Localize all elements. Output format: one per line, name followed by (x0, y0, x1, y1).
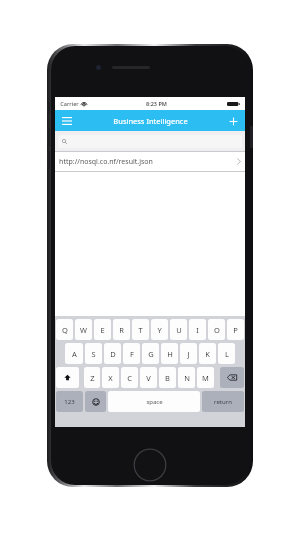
staticText: J (187, 349, 190, 359)
staticText: Z (90, 373, 95, 383)
staticText: P (233, 325, 238, 335)
staticText: U (176, 325, 182, 335)
button[interactable]: P (227, 319, 244, 340)
staticText: L (225, 349, 229, 359)
staticText: Carrier (60, 100, 79, 107)
staticText: Y (157, 325, 162, 335)
staticText: 123 (64, 398, 75, 406)
button[interactable]: M (197, 367, 214, 388)
button[interactable]: Emoji keyboard (85, 391, 106, 412)
button[interactable]: H (161, 343, 178, 364)
button[interactable]: Add (225, 113, 241, 129)
staticText: D (110, 349, 116, 359)
button[interactable]: G (142, 343, 159, 364)
staticText: O (214, 325, 220, 335)
button[interactable]: A (65, 343, 83, 364)
button[interactable]: space (108, 391, 200, 412)
staticText: V (146, 373, 151, 383)
button[interactable]: Q (56, 319, 73, 340)
staticText: E (100, 325, 105, 335)
staticText: A (72, 349, 77, 359)
button[interactable]: 123 (56, 391, 83, 412)
staticText: K (205, 349, 210, 359)
button[interactable]: K (199, 343, 216, 364)
button[interactable]: I (189, 319, 206, 340)
button[interactable]: X (102, 367, 119, 388)
button[interactable]: L (218, 343, 235, 364)
staticText: return (214, 398, 232, 406)
staticText: W (80, 325, 87, 335)
button[interactable]: return (202, 391, 244, 412)
staticText: Business Intelligence (113, 116, 188, 126)
button[interactable]: U (170, 319, 187, 340)
staticText: R (119, 325, 124, 335)
staticText: Q (62, 325, 68, 335)
button[interactable]: Search field (58, 135, 242, 148)
button[interactable]: Shift (56, 367, 79, 388)
button[interactable]: V (140, 367, 157, 388)
staticText: M (202, 373, 209, 383)
staticText: T (138, 325, 143, 335)
staticText: N (184, 373, 190, 383)
button[interactable]: Open navigation menu (59, 113, 75, 129)
button[interactable]: Z (84, 367, 100, 388)
button[interactable]: http://nosql.co.nf/result.json (55, 151, 245, 172)
button[interactable]: E (94, 319, 111, 340)
button[interactable]: S (85, 343, 102, 364)
staticText: H (167, 349, 173, 359)
button[interactable]: B (159, 367, 176, 388)
staticText: I (196, 325, 199, 335)
button[interactable]: T (132, 319, 149, 340)
button[interactable]: O (208, 319, 225, 340)
staticText: F (130, 349, 134, 359)
staticText: G (148, 349, 154, 359)
button[interactable]: J (180, 343, 197, 364)
staticText: S (91, 349, 96, 359)
button[interactable]: Backspace (220, 367, 244, 388)
button[interactable]: F (123, 343, 140, 364)
button[interactable]: D (104, 343, 121, 364)
staticText: 8:23 PM (146, 100, 167, 107)
button[interactable]: C (121, 367, 138, 388)
staticText: C (127, 373, 132, 383)
staticText: B (165, 373, 170, 383)
button[interactable]: W (75, 319, 92, 340)
button[interactable]: R (113, 319, 130, 340)
button[interactable]: N (178, 367, 195, 388)
staticText: space (146, 398, 163, 406)
staticText: X (108, 373, 113, 383)
staticText: http://nosql.co.nf/result.json (59, 157, 153, 167)
button[interactable]: Y (151, 319, 168, 340)
